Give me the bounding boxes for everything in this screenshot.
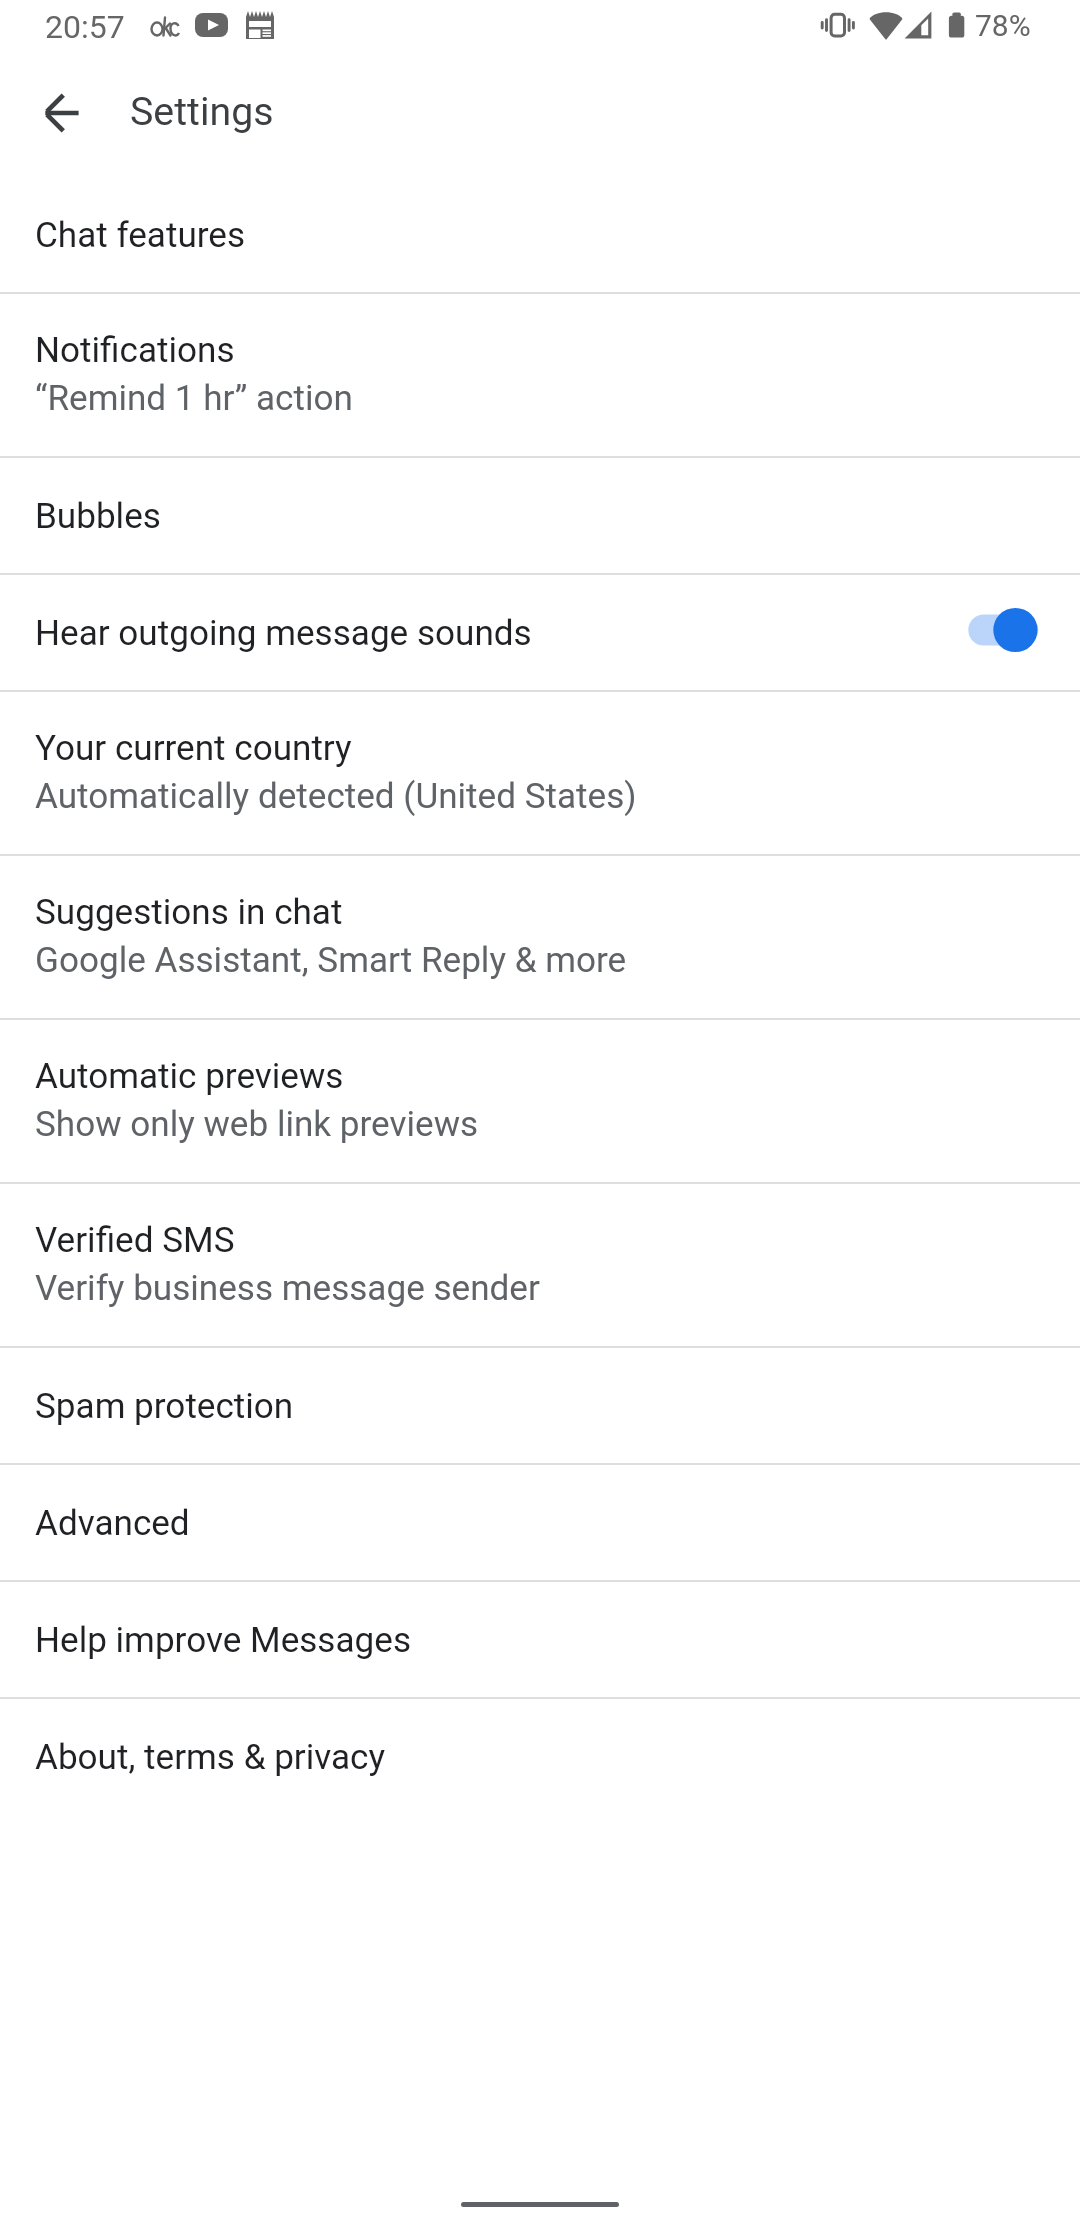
button[interactable]: Spam protection	[0, 1348, 1080, 1463]
button[interactable]: Suggestions in chat	[0, 856, 1080, 1018]
staticText: Verify business message sender	[35, 1267, 540, 1308]
staticText: Your current country	[35, 727, 352, 768]
button[interactable]: Advanced	[0, 1465, 1080, 1580]
staticText: Google Assistant, Smart Reply & more	[35, 939, 627, 980]
staticText: 78%	[975, 8, 1031, 43]
button[interactable]: Hear outgoing message sounds	[0, 575, 1080, 690]
staticText: Advanced	[35, 1502, 190, 1543]
button[interactable]: Verified SMS	[0, 1184, 1080, 1346]
button[interactable]: Navigate up	[25, 77, 97, 149]
staticText: “Remind 1 hr” action	[35, 377, 353, 418]
staticText: Chat features	[35, 214, 246, 255]
staticText: 20:57	[45, 8, 125, 46]
staticText: Suggestions in chat	[35, 891, 343, 932]
staticText: Show only web link previews	[35, 1103, 479, 1144]
staticText: Automatic previews	[35, 1055, 344, 1096]
staticText: Bubbles	[35, 495, 161, 536]
button[interactable]: About, terms & privacy	[0, 1699, 1080, 1814]
button[interactable]: Automatic previews	[0, 1020, 1080, 1182]
button[interactable]: Chat features	[0, 177, 1080, 292]
staticText: Spam protection	[35, 1385, 294, 1426]
button[interactable]: Help improve Messages	[0, 1582, 1080, 1697]
staticText: Automatically detected (United States)	[35, 775, 637, 816]
staticText: Verified SMS	[35, 1219, 235, 1260]
staticText: Hear outgoing message sounds	[35, 612, 532, 653]
button[interactable]: Bubbles	[0, 458, 1080, 573]
staticText: Help improve Messages	[35, 1619, 411, 1660]
staticText: About, terms & privacy	[35, 1736, 386, 1777]
staticText: Settings	[130, 89, 274, 135]
button[interactable]: Notifications	[0, 294, 1080, 456]
button[interactable]: Your current country	[0, 692, 1080, 854]
staticText: Notifications	[35, 329, 235, 370]
